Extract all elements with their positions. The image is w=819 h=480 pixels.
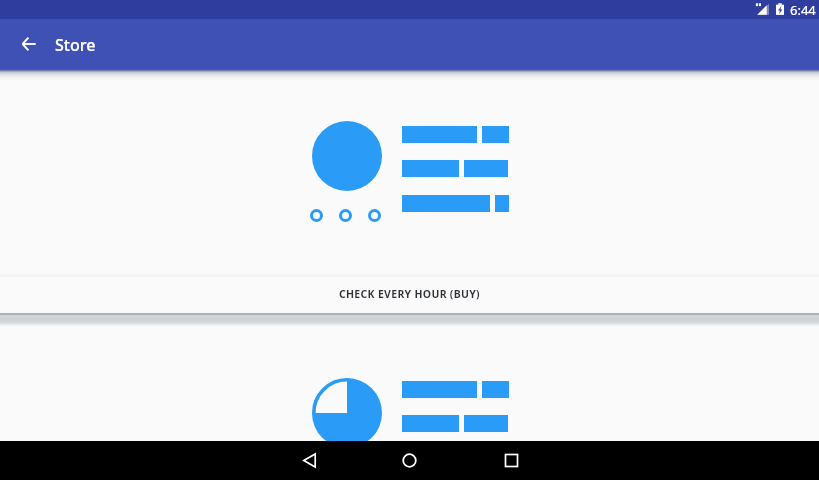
- button[interactable]: [0, 327, 819, 441]
- button[interactable]: Navigate up: [5, 20, 53, 68]
- other: Mobile signal: [755, 3, 769, 15]
- button[interactable]: Back: [285, 441, 333, 480]
- button[interactable]: [0, 79, 819, 274]
- staticText: CHECK EVERY HOUR (BUY): [339, 287, 480, 301]
- button[interactable]: Home: [385, 441, 433, 480]
- button[interactable]: CHECK EVERY HOUR (BUY): [0, 275, 819, 313]
- button[interactable]: Recent apps: [487, 441, 535, 480]
- staticText: Store: [55, 34, 96, 56]
- staticText: 6:44: [790, 1, 816, 19]
- other: Battery charging: [775, 3, 785, 15]
